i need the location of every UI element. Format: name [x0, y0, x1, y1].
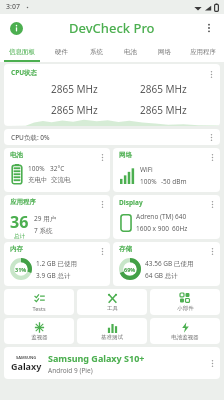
button[interactable]: CPU负载: 0% — [4, 129, 220, 145]
staticText: 32°C — [50, 164, 65, 173]
staticText: 工具 — [107, 305, 118, 312]
button[interactable]: Display — [113, 195, 220, 239]
staticText: 64 GB 总计 — [145, 271, 178, 280]
staticText: Galaxy — [11, 360, 42, 372]
staticText: SAMSUNG — [16, 355, 37, 360]
button[interactable]: 电池 — [4, 148, 110, 192]
button[interactable]: Card options — [206, 245, 218, 257]
button[interactable]: 电池 — [113, 42, 147, 62]
staticText: Tests — [32, 305, 46, 312]
staticText: Display — [119, 198, 143, 207]
staticText: 应用程序 — [10, 198, 36, 206]
staticText: 网络 — [158, 48, 171, 56]
staticText: CPU负载: 0% — [11, 133, 50, 142]
button[interactable]: 硬件 — [44, 42, 79, 62]
button[interactable]: Card options — [205, 68, 217, 80]
staticText: 信息面板 — [9, 48, 35, 56]
staticText: 60Hz — [172, 224, 188, 233]
button[interactable]: Card options — [206, 198, 218, 210]
staticText: WiFi — [140, 165, 153, 174]
button[interactable]: 内存 — [4, 242, 110, 286]
button[interactable]: More options — [200, 19, 218, 37]
button[interactable]: 应用程序 — [181, 42, 224, 62]
button[interactable]: Card options — [96, 198, 108, 210]
staticText: 3.9 GB 总计 — [36, 271, 71, 280]
staticText: 29 用户 — [34, 214, 57, 223]
staticText: 监视器 — [31, 334, 48, 341]
button[interactable]: Card options — [205, 131, 217, 143]
staticText: 2865 MHz — [140, 82, 187, 96]
button[interactable]: Card options — [96, 151, 108, 163]
staticText: 100% — [140, 177, 157, 186]
button[interactable]: 工具 — [77, 289, 147, 315]
staticText: 3:07 — [6, 2, 20, 12]
staticText: 电池 — [124, 48, 137, 56]
staticText: 43.56 GB 已使用 — [145, 259, 194, 268]
button[interactable]: CPU状态 — [4, 64, 220, 126]
staticText: 总计 — [14, 233, 25, 239]
staticText: DevCheck Pro — [69, 19, 155, 37]
button[interactable]: 电池监视器 — [150, 318, 220, 344]
staticText: 2865 MHz — [140, 103, 187, 117]
staticText: CPU状态 — [11, 68, 38, 77]
staticText: 69% — [124, 266, 136, 273]
button[interactable]: 基准测试 — [77, 318, 147, 344]
staticText: 2865 MHz — [51, 82, 98, 96]
button[interactable]: Tests — [4, 289, 74, 315]
staticText: Android 9 (Pie) — [48, 366, 93, 375]
button[interactable]: SAMSUNG — [4, 347, 220, 379]
staticText: 31% — [15, 266, 27, 273]
staticText: 1600 x 900 — [136, 224, 169, 233]
staticText: -50 dBm — [161, 177, 187, 186]
button[interactable]: 网络 — [147, 42, 181, 62]
staticText: 存储 — [119, 245, 132, 253]
staticText: 电池监视器 — [171, 334, 199, 341]
button[interactable]: 系统 — [79, 42, 113, 62]
staticText: 电池 — [10, 151, 23, 159]
staticText: 小部件 — [177, 305, 194, 312]
button[interactable]: 信息面板 — [0, 42, 44, 62]
staticText: 100% — [28, 164, 45, 173]
button[interactable]: 网络 — [113, 148, 220, 192]
staticText: 内存 — [10, 245, 23, 253]
staticText: 基准测试 — [101, 334, 123, 341]
staticText: 硬件 — [55, 48, 68, 56]
button[interactable]: Card options — [206, 151, 218, 163]
button[interactable]: 监视器 — [4, 318, 74, 344]
button[interactable]: 应用程序 — [4, 195, 110, 239]
staticText: 网络 — [119, 151, 132, 159]
staticText: 应用程序 — [190, 48, 216, 56]
staticText: 充电中 — [28, 176, 48, 184]
staticText: Samsung Galaxy S10+ — [48, 352, 145, 364]
staticText: 系统 — [90, 48, 103, 56]
button[interactable]: 小部件 — [150, 289, 220, 315]
staticText: Adreno (TM) 640 — [136, 212, 187, 221]
staticText: 1.2 GB 已使用 — [36, 259, 78, 268]
staticText: 7 系统 — [34, 226, 53, 235]
button[interactable]: Info — [8, 20, 24, 36]
staticText: 2865 MHz — [51, 103, 98, 117]
staticText: 36 — [10, 211, 29, 233]
staticText: 交流电 — [51, 176, 71, 184]
button[interactable]: 存储 — [113, 242, 220, 286]
button[interactable]: Card options — [206, 357, 218, 369]
button[interactable]: Card options — [96, 245, 108, 257]
